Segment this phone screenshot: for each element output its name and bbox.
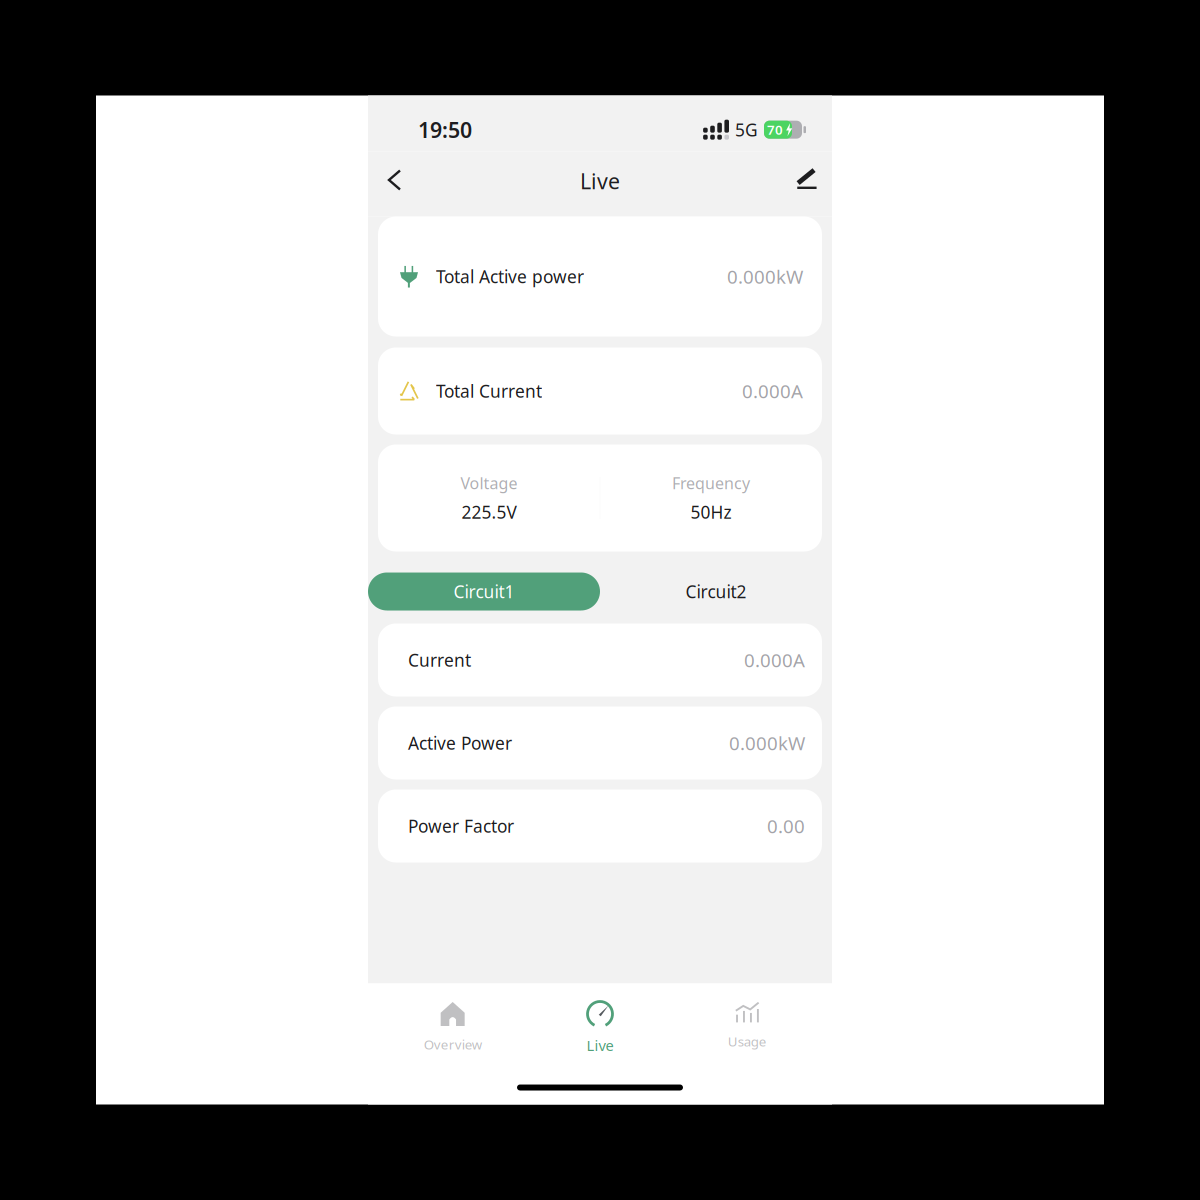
button[interactable]: Total Active power: [378, 216, 822, 336]
staticText: Frequency: [672, 472, 750, 494]
staticText: Current: [408, 648, 471, 671]
button[interactable]: Total Current: [378, 347, 822, 434]
staticText: Live: [586, 1035, 613, 1055]
staticText: 225.5V: [461, 501, 516, 524]
button[interactable]: Circuit1: [368, 572, 600, 610]
staticText: Circuit1: [453, 580, 514, 603]
staticText: 5G: [735, 118, 758, 141]
staticText: Power Factor: [408, 814, 514, 837]
staticText: Total Current: [436, 379, 542, 402]
staticText: Total Active power: [436, 265, 584, 288]
staticText: 0.000kW: [729, 731, 805, 755]
staticText: 0.000A: [744, 648, 805, 672]
staticText: 0.00: [767, 814, 805, 838]
button[interactable]: Back: [375, 156, 414, 203]
staticText: Circuit2: [685, 580, 746, 603]
staticText: 50Hz: [690, 501, 731, 524]
staticText: 70: [767, 121, 783, 138]
button[interactable]: Live: [526, 983, 674, 1059]
staticText: Active Power: [408, 731, 512, 754]
staticText: 0.000kW: [727, 264, 803, 289]
staticText: Live: [580, 167, 620, 195]
staticText: Overview: [424, 1035, 482, 1053]
staticText: Usage: [728, 1032, 767, 1050]
button[interactable]: Current: [378, 623, 822, 696]
staticText: 19:50: [418, 115, 472, 144]
button[interactable]: Circuit2: [600, 572, 832, 610]
button[interactable]: Power Factor: [378, 789, 822, 862]
button[interactable]: Overview: [379, 983, 526, 1059]
button[interactable]: Active Power: [378, 706, 822, 779]
staticText: Voltage: [460, 472, 517, 494]
button[interactable]: Usage: [674, 983, 821, 1059]
staticText: 0.000A: [742, 379, 803, 403]
button[interactable]: Edit: [785, 158, 828, 202]
